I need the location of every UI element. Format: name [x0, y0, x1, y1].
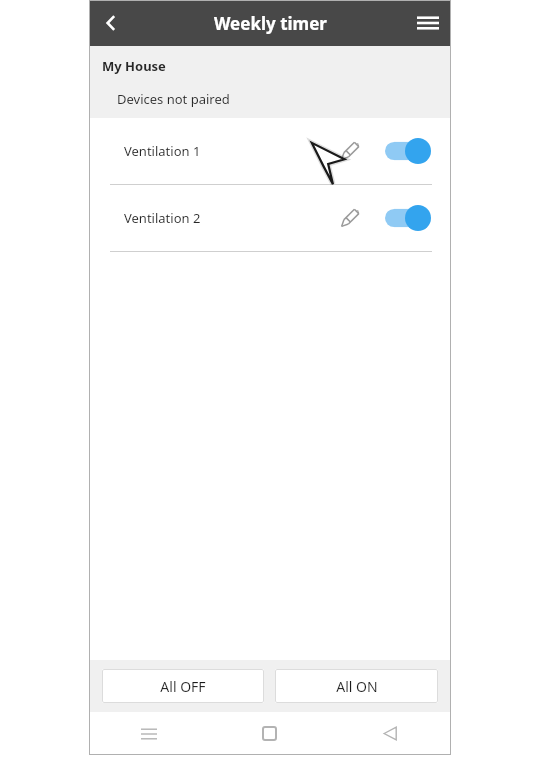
button[interactable]: Menu [405, 0, 451, 46]
button[interactable]: Edit [332, 133, 368, 169]
button[interactable]: Toggle [384, 203, 432, 233]
staticText: Devices not paired [117, 90, 230, 108]
button[interactable]: All OFF [102, 669, 264, 703]
button[interactable]: Edit [332, 200, 368, 236]
button[interactable]: Ventilation 1 [89, 118, 451, 184]
staticText: My House [102, 57, 166, 75]
button[interactable]: Back [89, 1, 133, 45]
staticText: All ON [336, 677, 378, 696]
staticText: Ventilation 2 [124, 209, 201, 227]
button[interactable]: Back [330, 712, 451, 755]
button[interactable]: All ON [275, 669, 438, 703]
button[interactable]: Ventilation 2 [89, 185, 451, 251]
button[interactable]: Recent apps [89, 712, 209, 755]
staticText: All OFF [160, 677, 206, 696]
button[interactable]: Home [209, 712, 330, 755]
staticText: Ventilation 1 [124, 142, 201, 160]
staticText: Weekly timer [214, 12, 327, 35]
button[interactable]: Toggle [384, 136, 432, 166]
